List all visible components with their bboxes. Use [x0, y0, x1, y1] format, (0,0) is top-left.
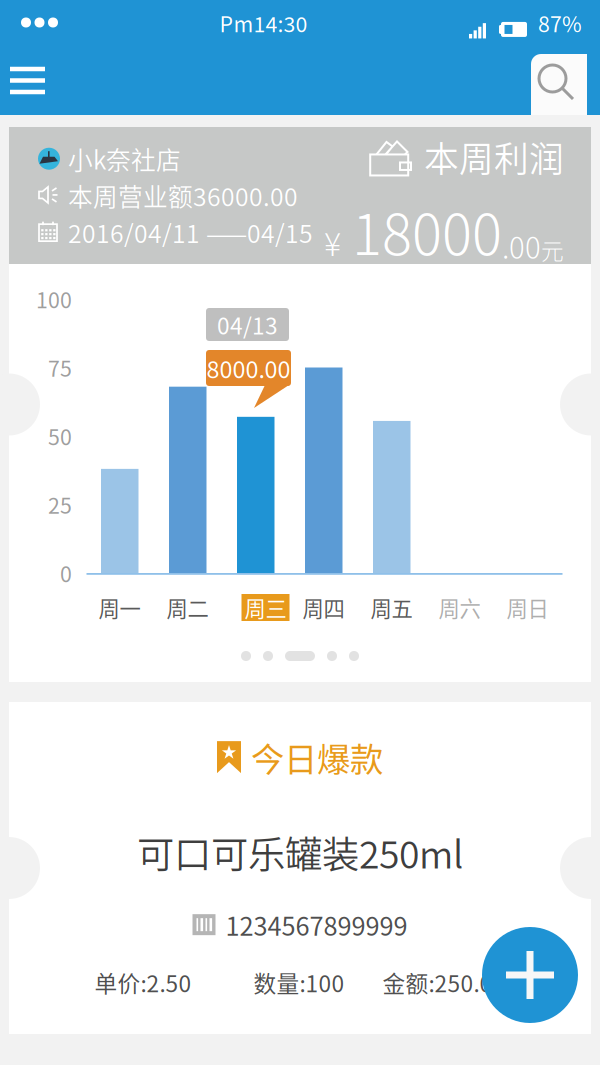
staticText: 2016/04/11 ——04/15 — [68, 214, 313, 250]
staticText: 元 — [541, 233, 564, 266]
button[interactable]: Add — [482, 927, 578, 1023]
staticText: 87% — [538, 8, 582, 38]
staticText: 1234567899999 — [225, 906, 407, 943]
button[interactable]: Menu — [0, 47, 67, 114]
staticText: Pm14:30 — [219, 8, 307, 38]
staticText: 周三 — [244, 592, 286, 623]
staticText: 周四 — [302, 592, 344, 623]
staticText: 8000.00 — [206, 351, 290, 385]
button[interactable]: Search — [531, 46, 600, 115]
staticText: 今日爆款 — [251, 733, 383, 781]
staticText: .00 — [502, 225, 541, 267]
staticText: 25 — [48, 489, 72, 520]
staticText: 周日 — [506, 592, 548, 623]
staticText: 50 — [48, 421, 72, 451]
staticText: 04/13 — [217, 308, 278, 341]
staticText: 周六 — [438, 592, 480, 623]
staticText: 金额:250.00 — [382, 966, 505, 999]
staticText: 100 — [36, 284, 72, 314]
staticText: ¥ — [324, 219, 341, 265]
staticText: 本周利润 — [424, 132, 564, 182]
staticText: 75 — [48, 352, 72, 383]
staticText: 周五 — [370, 592, 412, 623]
staticText: 周二 — [166, 592, 208, 623]
staticText: 数量:100 — [253, 966, 344, 999]
staticText: 小k奈社店 — [68, 141, 181, 177]
staticText: 0 — [60, 558, 72, 588]
staticText: 周一 — [98, 592, 140, 623]
staticText: 单价:2.50 — [94, 966, 191, 999]
staticText: 本周营业额36000.00 — [68, 178, 298, 213]
staticText: 18000 — [352, 190, 502, 271]
staticText: 可口可乐罐装250ml — [137, 825, 463, 879]
